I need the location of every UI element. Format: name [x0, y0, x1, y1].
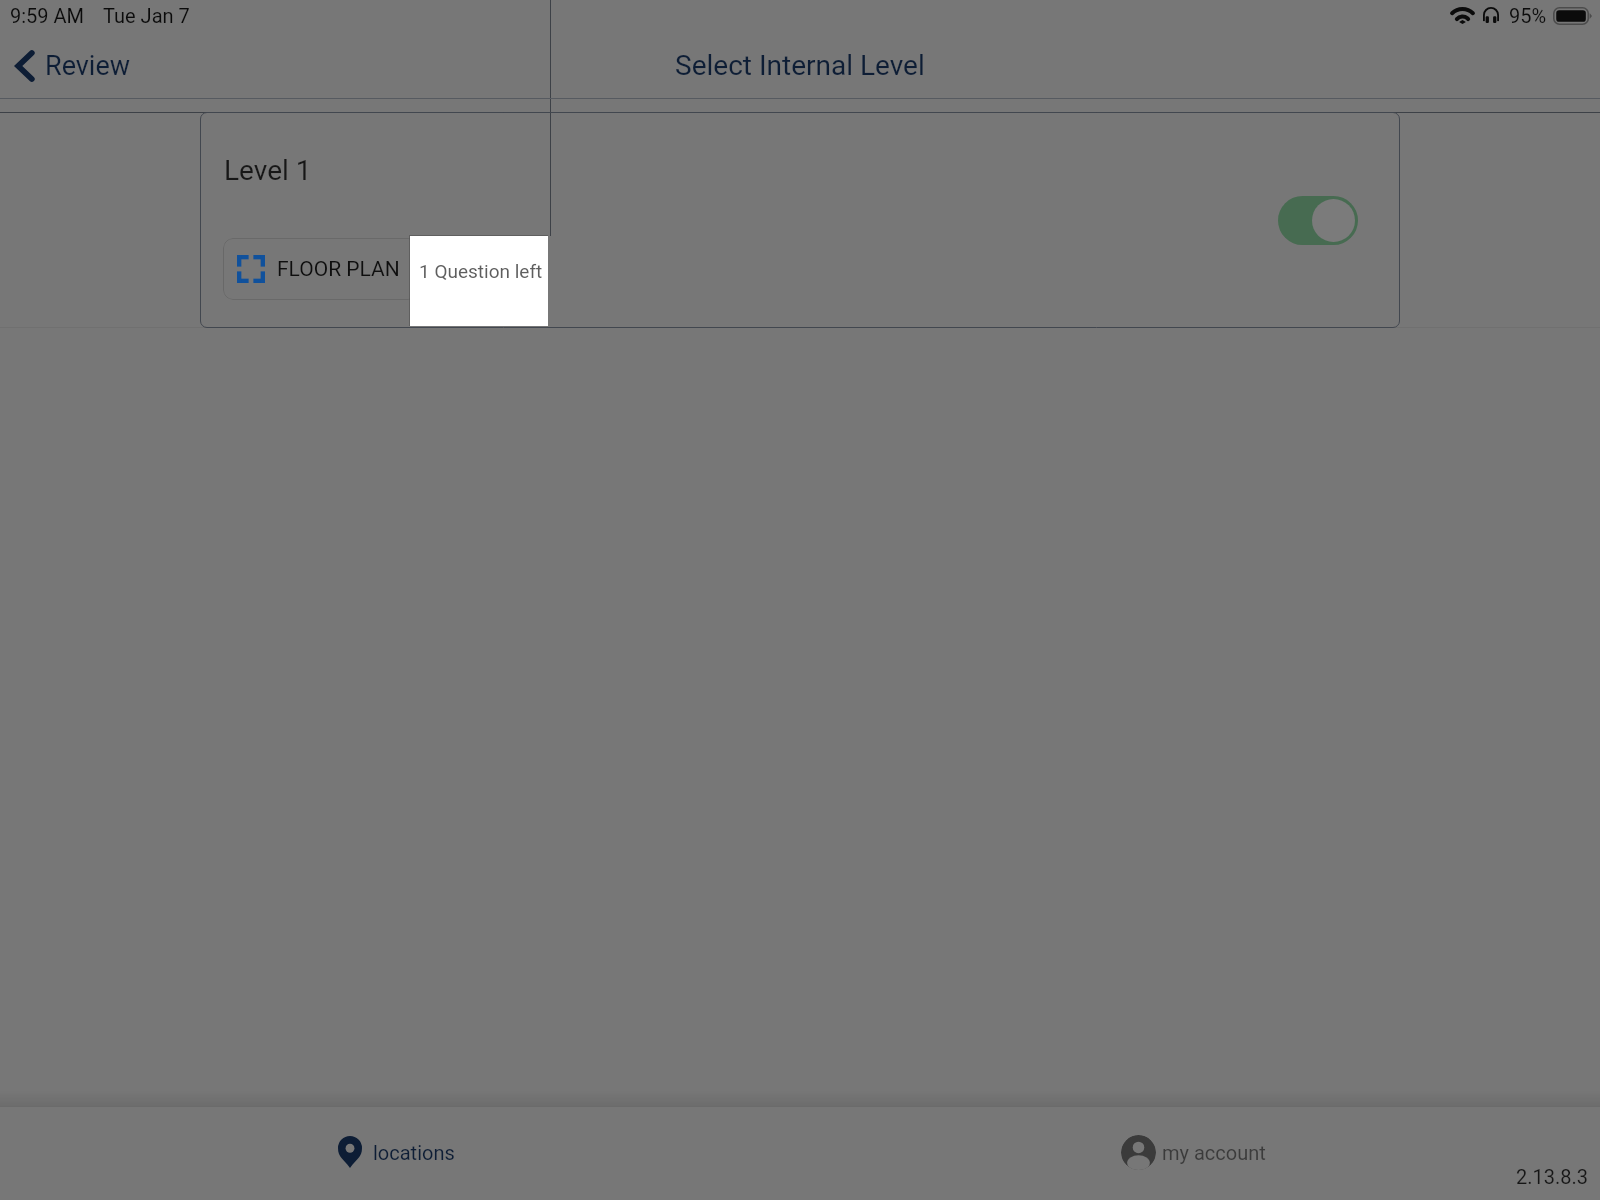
- button[interactable]: Review: [15, 41, 131, 91]
- button[interactable]: my account: [1121, 1135, 1266, 1170]
- staticText: Review: [45, 50, 131, 82]
- staticText: 2.13.8.3: [1516, 1165, 1589, 1188]
- staticText: my account: [1162, 1141, 1266, 1164]
- button[interactable]: Level 1 enabled: [1278, 196, 1358, 245]
- staticText: FLOOR PLAN: [277, 257, 400, 282]
- staticText: 9:59 AM: [10, 4, 85, 27]
- button[interactable]: locations: [338, 1136, 455, 1168]
- staticText: Select Internal Level: [675, 49, 925, 82]
- button[interactable]: Level 1: [200, 112, 1400, 328]
- staticText: Tue Jan 7: [103, 4, 190, 27]
- staticText: 1 Question left: [419, 260, 543, 282]
- staticText: Level 1: [224, 154, 312, 187]
- staticText: locations: [373, 1141, 455, 1164]
- staticText: 95%: [1509, 4, 1547, 27]
- button[interactable]: FLOOR PLAN: [223, 238, 418, 300]
